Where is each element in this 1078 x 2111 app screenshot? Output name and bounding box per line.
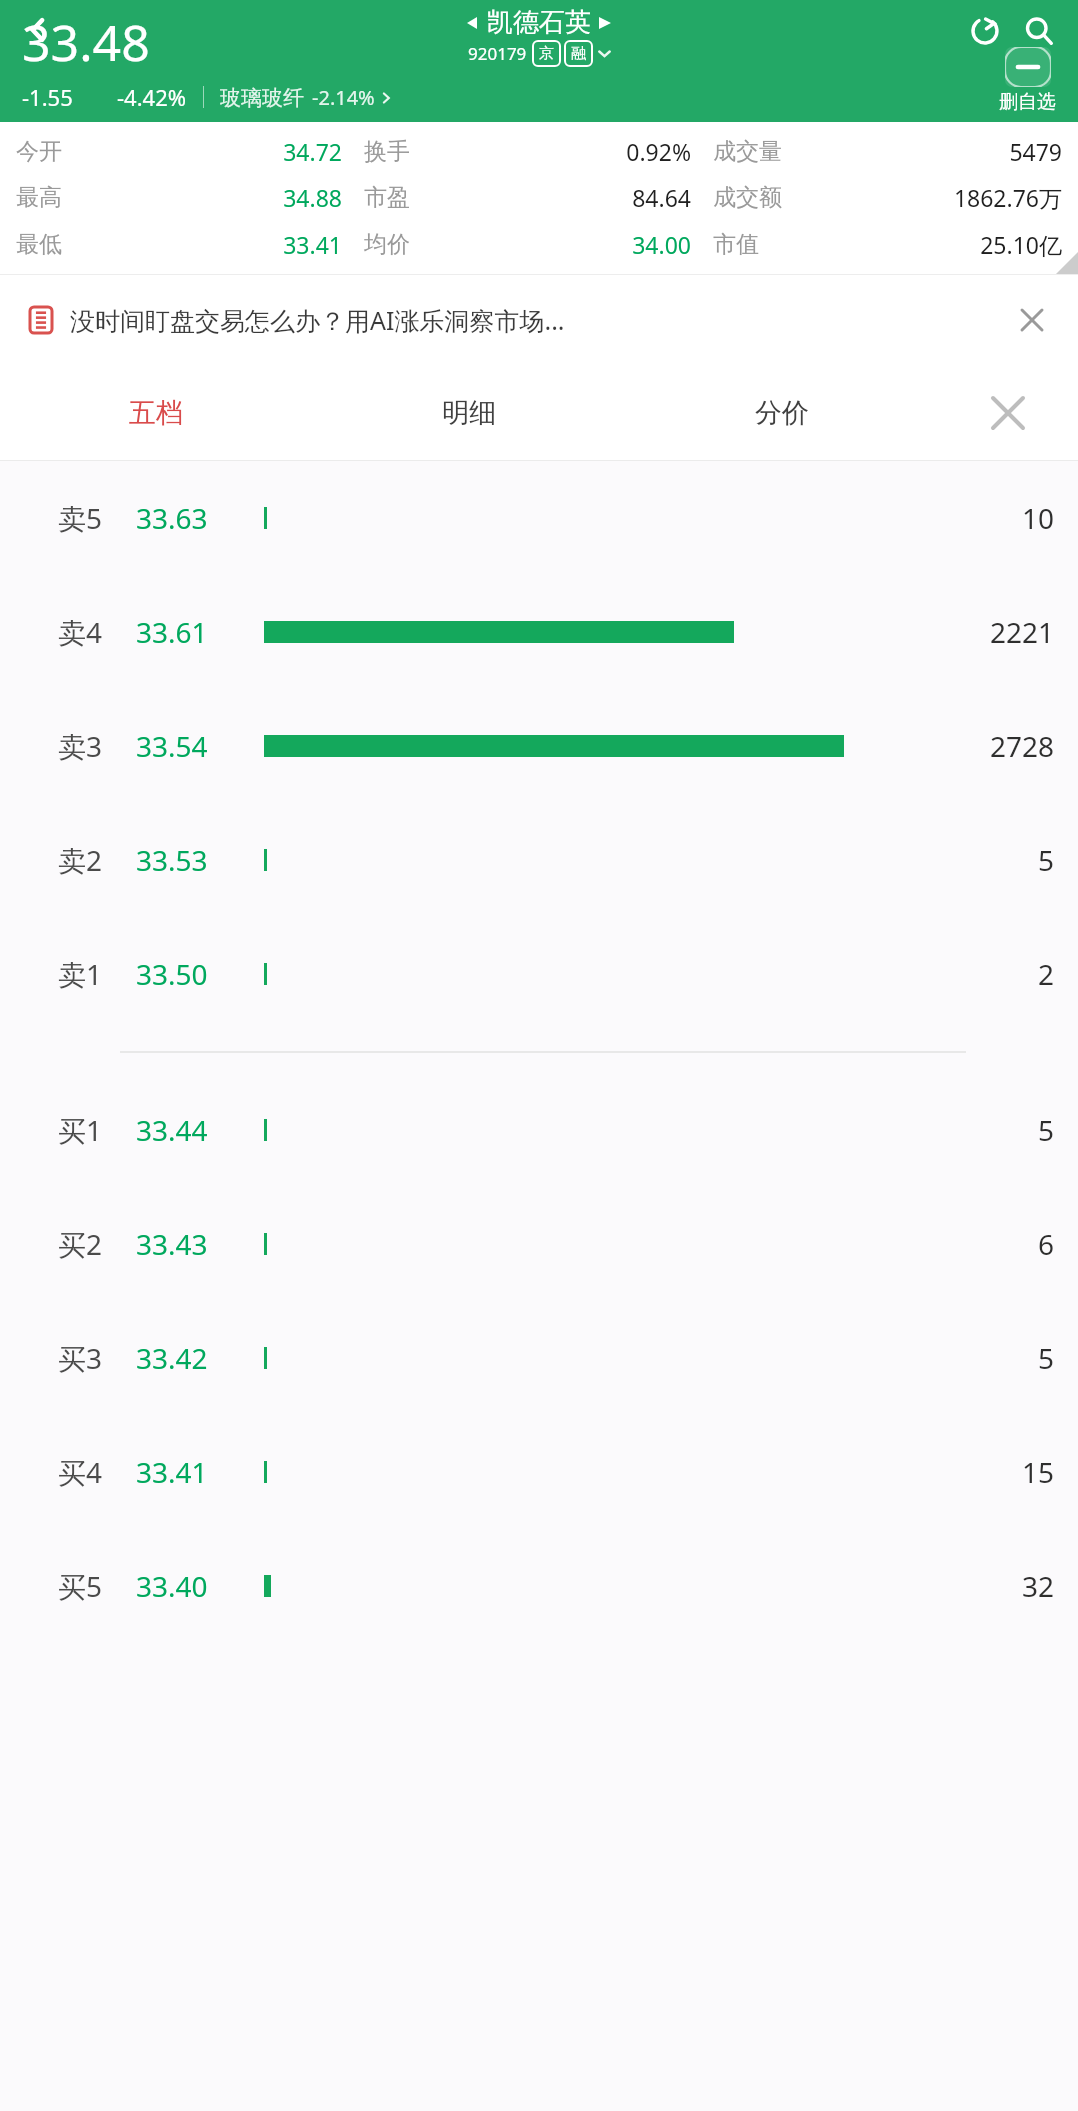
staticText: 5 (918, 1111, 1054, 1149)
staticText: 33.61 (136, 613, 252, 651)
staticText: 卖3 (58, 727, 136, 765)
staticText: 10 (918, 499, 1054, 537)
staticText: 33.54 (136, 727, 252, 765)
staticText: 5 (918, 1339, 1054, 1377)
staticText: 成交量 (713, 137, 782, 166)
staticText: 最低 (16, 230, 62, 259)
staticText: -4.42% (117, 82, 187, 112)
staticText: 33.43 (136, 1225, 252, 1263)
staticText: 33.50 (136, 955, 252, 993)
button[interactable]: 卖5 (0, 461, 1078, 575)
button[interactable]: Back (12, 4, 64, 56)
staticText: 卖1 (58, 955, 136, 993)
button[interactable]: 卖2 (0, 803, 1078, 917)
staticText: 33.63 (136, 499, 252, 537)
staticText: 33.40 (136, 1567, 252, 1605)
button[interactable]: 卖3 (0, 689, 1078, 803)
staticText: 明细 (442, 396, 496, 430)
button[interactable]: 删自选 (999, 47, 1056, 114)
staticText: 25.10亿 (759, 229, 1062, 260)
button[interactable]: 卖4 (0, 575, 1078, 689)
staticText: 33.41 (62, 229, 342, 260)
staticText: 15 (918, 1453, 1054, 1491)
staticText: 凯德石英 (487, 6, 591, 39)
staticText: 33.41 (136, 1453, 252, 1491)
staticText: 2728 (918, 727, 1054, 765)
staticText: 32 (918, 1567, 1054, 1605)
button[interactable]: 买3 (0, 1301, 1078, 1415)
staticText: 0.92% (410, 136, 691, 167)
staticText: 玻璃玻纤 (220, 85, 304, 111)
staticText: -1.55 (22, 82, 73, 112)
staticText: 5479 (782, 136, 1062, 167)
staticText: 五档 (129, 396, 183, 430)
staticText: 买2 (58, 1225, 136, 1263)
staticText: 34.72 (62, 136, 342, 167)
staticText: 84.64 (410, 182, 691, 213)
staticText: 买3 (58, 1339, 136, 1377)
staticText: 卖4 (58, 613, 136, 651)
staticText: 买1 (58, 1111, 136, 1149)
staticText: 5 (918, 841, 1054, 879)
staticText: 6 (918, 1225, 1054, 1263)
staticText: 均价 (364, 230, 410, 259)
button[interactable]: Close ad (1006, 294, 1058, 346)
staticText: 33.44 (136, 1111, 252, 1149)
staticText: 1862.76万 (782, 182, 1062, 213)
staticText: 成交额 (713, 183, 782, 212)
button[interactable]: Close panel (938, 365, 1078, 460)
staticText: -2.14% (312, 84, 375, 111)
staticText: 京 (539, 44, 554, 63)
staticText: 今开 (16, 137, 62, 166)
button[interactable]: 卖1 (0, 917, 1078, 1031)
button[interactable]: 玻璃玻纤 (220, 84, 393, 111)
button[interactable]: 买4 (0, 1415, 1078, 1529)
button[interactable]: 明细 (312, 365, 625, 460)
staticText: 2221 (918, 613, 1054, 651)
staticText: 33.48 (22, 8, 150, 76)
staticText: 34.00 (410, 229, 691, 260)
button[interactable]: 分价 (625, 365, 938, 460)
staticText: 33.53 (136, 841, 252, 879)
staticText: 卖2 (58, 841, 136, 879)
staticText: 920179 (468, 42, 527, 65)
staticText: 卖5 (58, 499, 136, 537)
staticText: 买4 (58, 1453, 136, 1491)
button[interactable]: Refresh (960, 6, 1010, 56)
button[interactable]: 买1 (0, 1073, 1078, 1187)
staticText: 分价 (755, 396, 809, 430)
staticText: 最高 (16, 183, 62, 212)
staticText: 2 (918, 955, 1054, 993)
staticText: 没时间盯盘交易怎么办？用AI涨乐洞察市场... (70, 303, 1006, 337)
staticText: 33.42 (136, 1339, 252, 1377)
staticText: 市值 (713, 230, 759, 259)
button[interactable]: Search (1014, 6, 1064, 56)
staticText: 删自选 (999, 90, 1056, 114)
staticText: 买5 (58, 1567, 136, 1605)
button[interactable]: 买2 (0, 1187, 1078, 1301)
staticText: 市盈 (364, 183, 410, 212)
button[interactable]: 买5 (0, 1529, 1078, 1643)
button[interactable]: 没时间盯盘交易怎么办？用AI涨乐洞察市场... (30, 275, 1058, 365)
button[interactable]: 五档 (0, 365, 312, 460)
staticText: 34.88 (62, 182, 342, 213)
staticText: 换手 (364, 137, 410, 166)
staticText: 融 (571, 44, 586, 63)
